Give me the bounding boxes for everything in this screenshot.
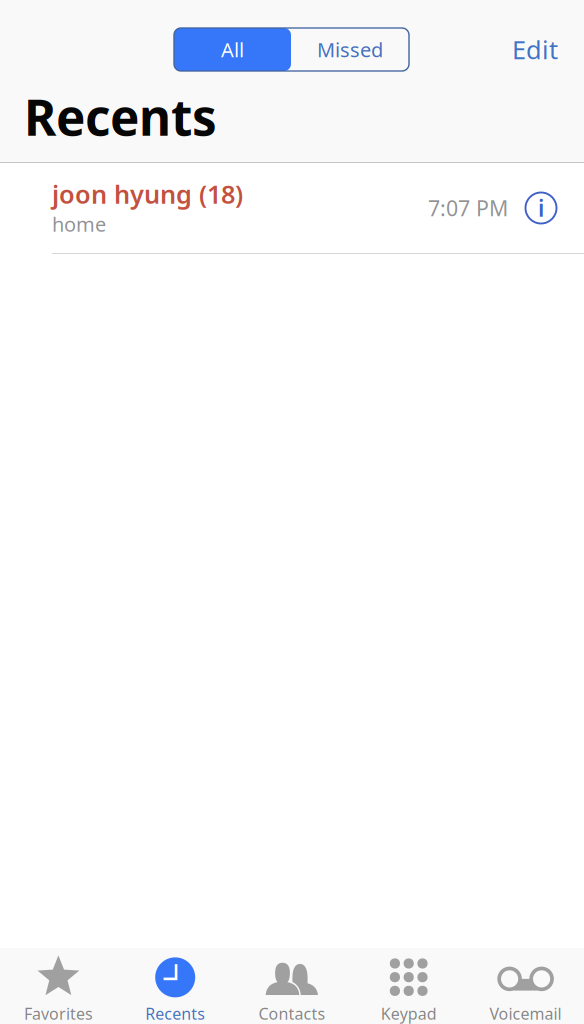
staticText: Missed bbox=[317, 36, 383, 63]
staticText: Edit bbox=[512, 33, 558, 66]
button[interactable]: Call details bbox=[511, 163, 584, 253]
staticText: Recents bbox=[24, 84, 217, 149]
staticText: home bbox=[52, 211, 106, 237]
staticText: 7:07 PM bbox=[428, 194, 508, 222]
staticText: All bbox=[221, 36, 244, 63]
staticText: i bbox=[538, 193, 544, 223]
staticText: Recents bbox=[145, 1003, 205, 1024]
button[interactable]: Voicemail bbox=[467, 948, 584, 1024]
button[interactable]: joon hyung (18) bbox=[0, 163, 511, 253]
staticText: Voicemail bbox=[490, 1003, 562, 1024]
staticText: Contacts bbox=[258, 1003, 325, 1024]
button[interactable]: All bbox=[174, 28, 291, 71]
button[interactable]: Missed bbox=[291, 28, 409, 71]
button[interactable]: Keypad bbox=[350, 948, 467, 1024]
button[interactable]: Favorites bbox=[0, 948, 117, 1024]
button[interactable]: Edit bbox=[512, 28, 584, 71]
staticText: Keypad bbox=[381, 1003, 437, 1024]
staticText: joon hyung (18) bbox=[52, 177, 243, 211]
button[interactable]: Contacts bbox=[234, 948, 350, 1024]
staticText: Favorites bbox=[24, 1003, 93, 1024]
button[interactable]: Recents bbox=[117, 948, 234, 1024]
